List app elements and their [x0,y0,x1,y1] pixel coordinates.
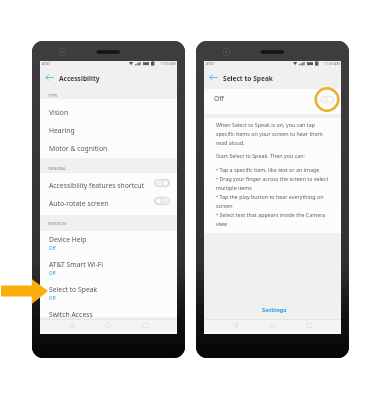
staticText: AT&T Smart Wi-Fi [49,260,104,269]
button[interactable]: Turn on Select to Speak [314,87,340,112]
staticText: Select to Speak [49,285,98,294]
staticText: Vision [49,108,69,117]
staticText: Auto-rotate screen [49,199,109,208]
button[interactable]: Device Help [40,231,177,256]
button[interactable]: Back [66,320,77,331]
staticText: GENERAL [48,166,67,172]
button[interactable]: AT&T Smart Wi-Fi [40,256,177,281]
button[interactable]: Accessibility features shortcut [40,174,177,192]
staticText: AT&T [206,61,215,66]
staticText: Select to Speak [223,74,273,83]
button[interactable]: Navigate up [208,72,219,83]
staticText: Switch Access [49,310,93,317]
staticText: Off [214,94,224,103]
button[interactable]: Vision [40,101,177,119]
button[interactable]: Settings [204,305,341,319]
staticText: Hearing [49,126,75,135]
staticText: Device Help [49,235,87,244]
staticText: Off [49,245,56,251]
staticText: 11:05 AM [324,61,340,66]
button[interactable]: Recent apps [304,320,315,331]
staticText: Accessibility [59,74,100,83]
staticText: • Tap a specific item, like text or an i… [216,166,329,228]
button[interactable]: Motor & cognition [40,137,177,155]
other: Pointer to Select to Speak [1,279,48,304]
button[interactable]: Navigate up [44,72,55,83]
staticText: Off [49,270,56,276]
button[interactable]: Recent apps [140,320,151,331]
staticText: When Select to Speak is on, you can tap … [216,121,323,147]
staticText: SERVICES [48,221,67,227]
staticText: Settings [262,306,287,314]
button[interactable]: Home [267,320,278,331]
staticText: 11:05 AM [160,61,176,66]
button[interactable]: Hearing [40,119,177,137]
staticText: Off [49,295,56,301]
button[interactable]: Home [103,320,114,331]
staticText: TYPE [48,93,58,99]
button[interactable]: Back [230,320,241,331]
button[interactable]: Auto-rotate screen [40,192,177,210]
button[interactable]: Select to Speak [40,281,177,306]
staticText: Accessibility features shortcut [49,181,145,190]
staticText: Motor & cognition [49,144,108,153]
staticText: Start Select to Speak. Then you can: [216,152,305,159]
staticText: AT&T [42,61,51,66]
button[interactable]: Switch Access [40,306,177,317]
